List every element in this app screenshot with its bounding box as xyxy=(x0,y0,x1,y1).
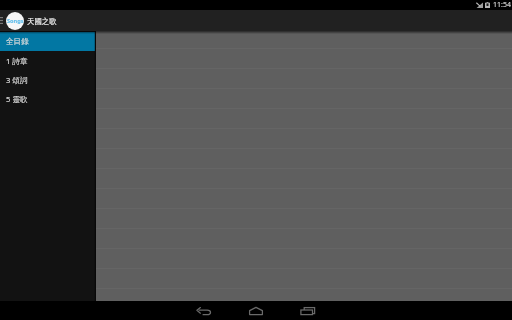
staticText: 3 頌詞 xyxy=(6,75,28,85)
button[interactable]: 5 靈歌 xyxy=(0,89,95,108)
button[interactable]: 3 頌詞 xyxy=(0,70,95,89)
button[interactable]: Home xyxy=(236,301,276,320)
staticText: 1 詩章 xyxy=(6,56,28,66)
button[interactable]: 全目錄 xyxy=(0,32,95,51)
button[interactable]: 1 詩章 xyxy=(0,51,95,70)
button[interactable] xyxy=(96,309,512,320)
button[interactable]: Recent apps xyxy=(288,301,328,320)
staticText: 天國之歌 xyxy=(27,17,57,26)
staticText: 11:54 xyxy=(493,0,511,10)
staticText: Songs xyxy=(7,17,24,25)
button[interactable]: Back xyxy=(184,301,224,320)
button[interactable] xyxy=(96,29,512,49)
button[interactable]: Open navigation drawer xyxy=(0,10,3,31)
staticText: 全目錄 xyxy=(6,37,29,47)
staticText: 5 靈歌 xyxy=(6,94,28,104)
button[interactable] xyxy=(96,289,512,309)
